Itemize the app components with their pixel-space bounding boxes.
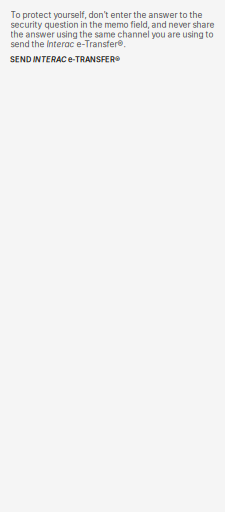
staticText: SEND INTERAC e-TRANSFER® [10,55,120,64]
staticText: To protect yourself, don't enter the ans… [10,10,214,49]
